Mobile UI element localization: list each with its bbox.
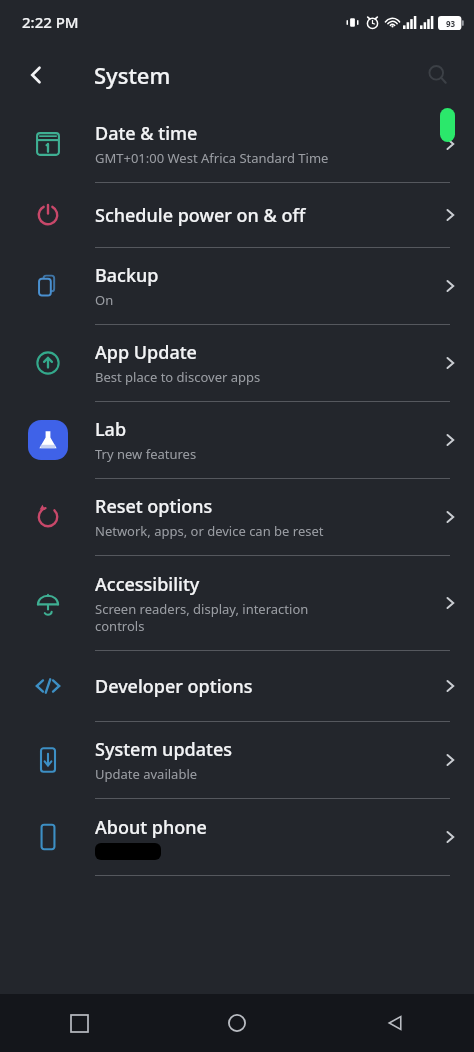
staticText: Network, apps, or device can be reset [95, 522, 324, 540]
button[interactable]: Backup [0, 248, 474, 324]
button[interactable]: Home [158, 994, 316, 1052]
button[interactable]: Accessibility [0, 556, 474, 650]
button[interactable]: Lab [0, 402, 474, 478]
staticText: Screen readers, display, interaction con… [95, 600, 309, 635]
button[interactable]: Schedule power on & off [0, 183, 474, 247]
staticText: System [94, 60, 171, 90]
button[interactable]: App Update [0, 325, 474, 401]
button[interactable]: Back [14, 53, 58, 97]
staticText: On [95, 291, 114, 309]
staticText: 2:22 PM [22, 12, 79, 32]
button[interactable]: About phone [0, 799, 474, 875]
staticText: 93 [446, 18, 456, 29]
button[interactable]: Back [316, 994, 474, 1052]
staticText: About phone [95, 815, 207, 840]
staticText: Developer options [95, 674, 253, 699]
staticText: Update available [95, 765, 198, 783]
button[interactable]: Search [416, 53, 460, 97]
staticText: App Update [95, 340, 197, 365]
staticText: System updates [95, 737, 232, 762]
staticText: Try new features [95, 445, 197, 463]
staticText: Best place to discover apps [95, 368, 261, 386]
staticText: Schedule power on & off [95, 203, 306, 228]
button[interactable]: Developer options [0, 651, 474, 721]
button[interactable]: Date & time [0, 106, 474, 182]
staticText: Backup [95, 263, 159, 288]
staticText: Lab [95, 417, 127, 442]
staticText: Date & time [95, 121, 198, 146]
button[interactable]: Reset options [0, 479, 474, 555]
staticText: GMT+01:00 West Africa Standard Time [95, 149, 329, 167]
button[interactable]: Recent apps [0, 994, 158, 1052]
button[interactable]: System updates [0, 722, 474, 798]
staticText: Accessibility [95, 572, 200, 597]
staticText: Reset options [95, 494, 213, 519]
